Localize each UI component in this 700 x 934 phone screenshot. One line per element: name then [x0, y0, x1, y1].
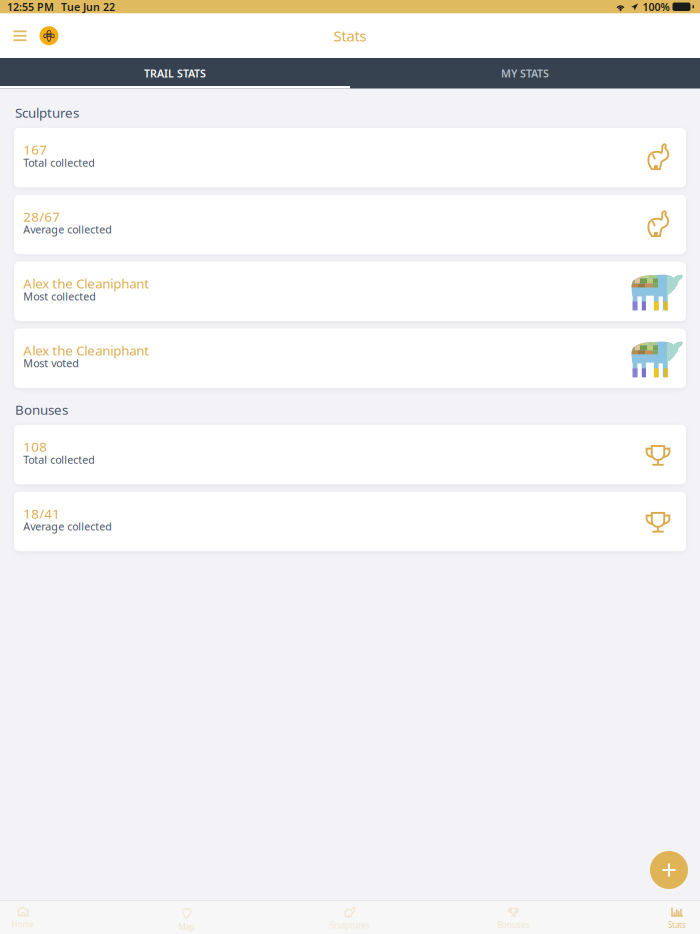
staticText: Total collected: [23, 452, 95, 467]
button[interactable]: 108: [14, 425, 686, 484]
staticText: 167: [23, 141, 47, 158]
staticText: Alex the Cleaniphant: [23, 274, 149, 292]
button[interactable]: Add: [646, 847, 692, 893]
staticText: 28/67: [23, 208, 60, 225]
staticText: TRAIL STATS: [144, 66, 206, 80]
staticText: Alex the Cleaniphant: [23, 341, 149, 359]
staticText: Bonuses: [15, 401, 68, 418]
button[interactable]: Map: [163, 901, 209, 934]
button[interactable]: Bonuses: [490, 901, 536, 934]
button[interactable]: Home: [0, 901, 46, 934]
button[interactable]: MY STATS: [350, 58, 700, 88]
staticText: Stats: [668, 920, 686, 930]
staticText: Home: [11, 919, 34, 930]
staticText: 100%: [642, 0, 669, 14]
button[interactable]: Alex the Cleaniphant: [14, 329, 686, 388]
staticText: Sculptures: [330, 920, 370, 931]
staticText: 18/41: [23, 505, 60, 522]
staticText: 108: [23, 438, 47, 455]
button[interactable]: 28/67: [14, 195, 686, 254]
staticText: Average collected: [23, 519, 112, 533]
button[interactable]: Profile: [36, 23, 62, 49]
staticText: Average collected: [23, 222, 112, 236]
staticText: Total collected: [23, 155, 95, 170]
button[interactable]: Menu: [7, 23, 33, 49]
button[interactable]: TRAIL STATS: [0, 58, 350, 88]
button[interactable]: Alex the Cleaniphant: [14, 262, 686, 321]
button[interactable]: 167: [14, 128, 686, 187]
staticText: Stats: [333, 26, 366, 45]
staticText: Tue Jun 22: [61, 0, 115, 14]
staticText: Bonuses: [497, 920, 530, 930]
button[interactable]: Stats: [654, 901, 700, 934]
button[interactable]: 18/41: [14, 492, 686, 551]
staticText: MY STATS: [501, 66, 549, 80]
staticText: Map: [178, 922, 194, 932]
staticText: 12:55 PM: [7, 0, 54, 14]
staticText: Most collected: [23, 289, 96, 303]
staticText: Most voted: [23, 356, 79, 370]
button[interactable]: Sculptures: [327, 901, 373, 934]
staticText: Sculptures: [15, 104, 79, 121]
